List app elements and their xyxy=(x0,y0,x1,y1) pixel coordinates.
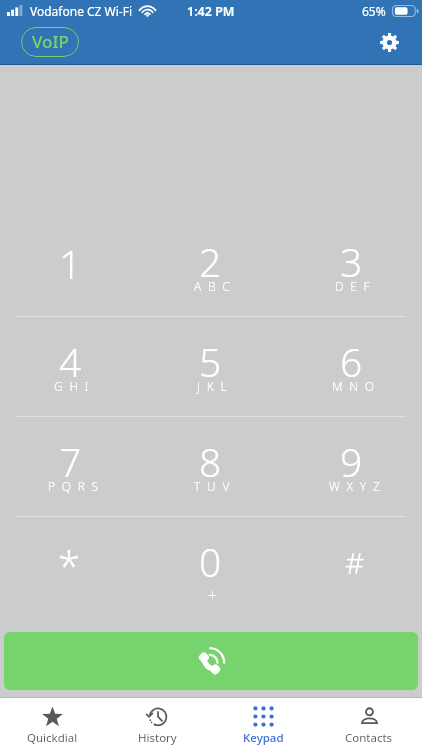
staticText: Keypad xyxy=(243,730,284,746)
staticText: 1 xyxy=(59,237,82,290)
staticText: D E F xyxy=(335,278,372,294)
button[interactable]: 4 xyxy=(0,316,140,416)
staticText: Vodafone CZ Wi-Fi xyxy=(30,3,133,19)
button[interactable]: * xyxy=(0,516,140,616)
staticText: 6 xyxy=(340,335,363,388)
button[interactable]: 9 xyxy=(281,416,422,516)
button[interactable]: 7 xyxy=(0,416,140,516)
staticText: 7 xyxy=(59,435,82,488)
staticText: * xyxy=(58,538,81,592)
button[interactable]: 0 xyxy=(140,516,281,616)
button[interactable]: 5 xyxy=(140,316,281,416)
button[interactable]: 3 xyxy=(281,216,422,316)
staticText: G H I xyxy=(54,378,91,394)
button[interactable]: 1 xyxy=(0,216,140,316)
staticText: 65% xyxy=(362,3,386,19)
staticText: W X Y Z xyxy=(329,478,382,494)
button[interactable]: 6 xyxy=(281,316,422,416)
button[interactable]: Quickdial xyxy=(0,698,105,750)
staticText: 2 xyxy=(199,235,222,288)
staticText: Contacts xyxy=(345,730,393,746)
staticText: History xyxy=(138,730,177,746)
staticText: 1:42 PM xyxy=(187,3,235,20)
staticText: 3 xyxy=(340,235,363,288)
staticText: Quickdial xyxy=(27,730,78,746)
staticText: T U V xyxy=(194,478,232,494)
button[interactable]: Keypad xyxy=(210,698,316,750)
staticText: A B C xyxy=(194,278,232,294)
staticText: 9 xyxy=(340,435,363,488)
button[interactable]: 8 xyxy=(140,416,281,516)
staticText: 8 xyxy=(199,435,222,488)
staticText: + xyxy=(208,584,218,606)
button[interactable]: Settings xyxy=(372,26,408,62)
staticText: P Q R S xyxy=(48,478,100,494)
staticText: 5 xyxy=(199,335,222,388)
staticText: # xyxy=(345,542,365,583)
staticText: VoIP xyxy=(32,30,69,53)
button[interactable]: Contacts xyxy=(316,698,422,750)
button[interactable]: 2 xyxy=(140,216,281,316)
staticText: J K L xyxy=(197,378,229,394)
button[interactable]: History xyxy=(105,698,210,750)
staticText: 4 xyxy=(59,335,82,388)
button[interactable]: Call xyxy=(4,632,418,690)
button[interactable]: VoIP xyxy=(21,27,79,57)
staticText: 0 xyxy=(199,535,222,588)
staticText: M N O xyxy=(332,378,376,394)
button[interactable]: # xyxy=(281,516,422,616)
